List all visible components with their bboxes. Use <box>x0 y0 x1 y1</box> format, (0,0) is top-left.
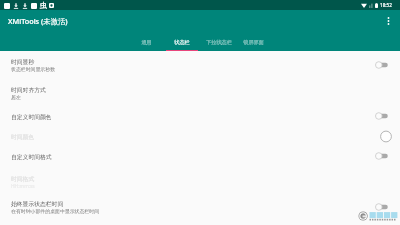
button[interactable]: 时间颜色 <box>0 129 400 143</box>
staticText: 通用 <box>141 39 152 45</box>
button[interactable]: 下拉状态栏 <box>200 34 238 51</box>
staticText: 18:52 <box>380 2 392 8</box>
staticText: 下拉状态栏 <box>206 39 232 45</box>
staticText: 自定义时间格式 <box>11 153 52 160</box>
button[interactable]: 锁屏界面 <box>239 34 268 51</box>
button[interactable]: 自定义时间颜色 <box>0 109 400 123</box>
staticText: 状态栏时间显示秒数 <box>11 66 56 72</box>
staticText: 虫 <box>40 1 46 10</box>
button[interactable]: 状态栏 <box>166 34 198 51</box>
staticText: 自定义时间颜色 <box>11 113 52 120</box>
staticText: 锁屏界面 <box>243 39 264 45</box>
button[interactable]: 时间对齐方式 <box>0 81 400 105</box>
staticText: 时间格式 <box>11 175 35 182</box>
staticText: 时间颜色 <box>11 133 35 140</box>
button[interactable]: 始终显示状态栏时间 <box>0 195 400 219</box>
staticText: 在有时钟小部件的桌面中显示状态栏时间 <box>11 208 100 214</box>
staticText: 状态栏 <box>174 39 190 45</box>
button[interactable]: More options <box>378 10 400 34</box>
staticText: 居左 <box>11 94 21 100</box>
staticText: XMiTools (未激活) <box>8 16 68 26</box>
staticText: HH:mm:ss <box>11 183 35 190</box>
staticText: 时间显秒 <box>11 58 35 65</box>
staticText: 始终显示状态栏时间 <box>11 200 64 207</box>
staticText: 时间对齐方式 <box>11 86 46 93</box>
button[interactable]: 时间显秒 <box>0 53 400 77</box>
button[interactable]: 通用 <box>131 34 161 51</box>
button[interactable]: 自定义时间格式 <box>0 149 400 163</box>
